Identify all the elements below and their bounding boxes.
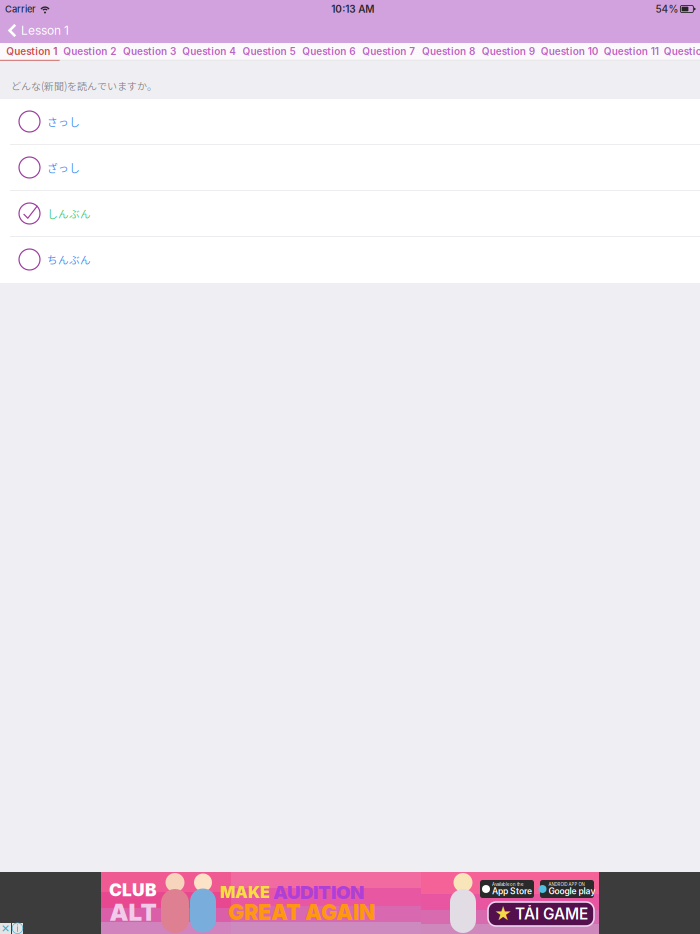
staticText: 10:13 AM bbox=[331, 3, 374, 15]
button[interactable]: Question 9 bbox=[478, 43, 538, 61]
staticText: Google play bbox=[548, 886, 595, 896]
button[interactable]: Question 11 bbox=[601, 43, 661, 61]
staticText: ちんぶん bbox=[47, 252, 91, 267]
button[interactable]: Question 12 bbox=[661, 43, 700, 61]
staticText: Available on the bbox=[492, 882, 523, 887]
button[interactable]: Close ad bbox=[0, 923, 11, 934]
button[interactable]: ちんぶん bbox=[0, 237, 700, 283]
button[interactable]: Question 1 bbox=[0, 43, 60, 61]
button[interactable]: ★ bbox=[488, 902, 594, 926]
staticText: ALT bbox=[109, 897, 156, 926]
staticText: Question 9 bbox=[482, 45, 535, 57]
button[interactable]: さっし bbox=[0, 99, 700, 145]
button[interactable]: ざっし bbox=[0, 145, 700, 191]
staticText: しんぶん bbox=[47, 206, 91, 221]
staticText: さっし bbox=[47, 114, 80, 129]
staticText: TẢI GAME bbox=[515, 905, 588, 923]
staticText: ✕ bbox=[1, 922, 10, 934]
staticText: Question 4 bbox=[182, 45, 236, 57]
staticText: MAKE bbox=[220, 882, 270, 902]
staticText: Lesson 1 bbox=[21, 23, 69, 38]
button[interactable]: Lesson 1 bbox=[0, 18, 81, 43]
staticText: AUDITION bbox=[273, 881, 364, 903]
button[interactable]: Question 3 bbox=[120, 43, 179, 61]
staticText: App Store bbox=[492, 886, 532, 896]
button[interactable]: Question 7 bbox=[359, 43, 419, 61]
staticText: ★ bbox=[494, 903, 512, 924]
staticText: 54% bbox=[655, 3, 678, 15]
staticText: GREAT AGAIN bbox=[228, 899, 375, 925]
staticText: Question 11 bbox=[604, 45, 659, 57]
button[interactable]: Ad info bbox=[12, 923, 23, 934]
staticText: Question 10 bbox=[541, 45, 599, 57]
staticText: Question 1 bbox=[6, 45, 57, 57]
staticText: Question 2 bbox=[63, 45, 116, 57]
staticText: ⓘ bbox=[11, 921, 23, 934]
staticText: どんな(新聞)を読んでいますか。 bbox=[11, 78, 157, 93]
staticText: ざっし bbox=[47, 160, 80, 175]
staticText: Question 7 bbox=[362, 45, 415, 57]
button[interactable]: しんぶん bbox=[0, 191, 700, 237]
staticText: Question 6 bbox=[302, 45, 355, 57]
staticText: Question 3 bbox=[123, 45, 176, 57]
button[interactable]: Question 2 bbox=[60, 43, 120, 61]
staticText: Carrier bbox=[5, 3, 36, 15]
staticText: Question 8 bbox=[422, 45, 475, 57]
staticText: CLUB bbox=[109, 879, 157, 900]
staticText: ANDROID APP ON bbox=[548, 882, 584, 887]
staticText: Question 12 bbox=[664, 45, 700, 57]
staticText: Question 5 bbox=[243, 45, 296, 57]
button[interactable]: Question 5 bbox=[239, 43, 299, 61]
button[interactable]: Question 6 bbox=[299, 43, 359, 61]
button[interactable]: Question 4 bbox=[179, 43, 239, 61]
button[interactable]: CLUB bbox=[101, 872, 599, 934]
button[interactable]: Question 10 bbox=[538, 43, 601, 61]
button[interactable]: Question 8 bbox=[418, 43, 478, 61]
